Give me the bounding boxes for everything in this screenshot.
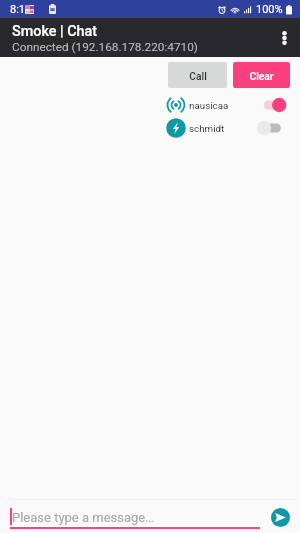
button[interactable]: More options [269,18,300,57]
staticText: Please type a message… [12,510,154,525]
staticText: nausicaa [189,100,229,111]
button[interactable]: nausicaa [166,94,286,116]
staticText: 100% [256,3,283,16]
button[interactable]: schmidt [166,117,286,139]
staticText: Smoke | Chat [12,23,98,40]
button[interactable]: Clear [233,62,290,88]
button[interactable]: Send [271,508,290,527]
staticText: 8:12 [10,3,32,16]
button[interactable]: Call [168,62,227,88]
staticText: schmidt [189,123,225,134]
staticText: Call [189,70,207,82]
button[interactable]: Please type a message… [10,508,260,529]
button[interactable]: Toggle schmidt [256,119,286,137]
button[interactable]: Toggle nausicaa [256,96,286,114]
staticText: Connected (192.168.178.220:4710) [12,40,198,54]
staticText: Clear [249,70,274,82]
